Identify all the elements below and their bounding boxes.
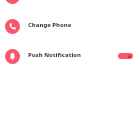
button[interactable]: Toggle push notification [118, 53, 133, 59]
staticText: Change Phone [28, 21, 72, 29]
button[interactable]: Change Phone [0, 11, 140, 41]
button[interactable]: Account Settings [0, 0, 140, 11]
staticText: Push Notification [28, 51, 81, 59]
button[interactable]: Push Notification [0, 41, 140, 71]
